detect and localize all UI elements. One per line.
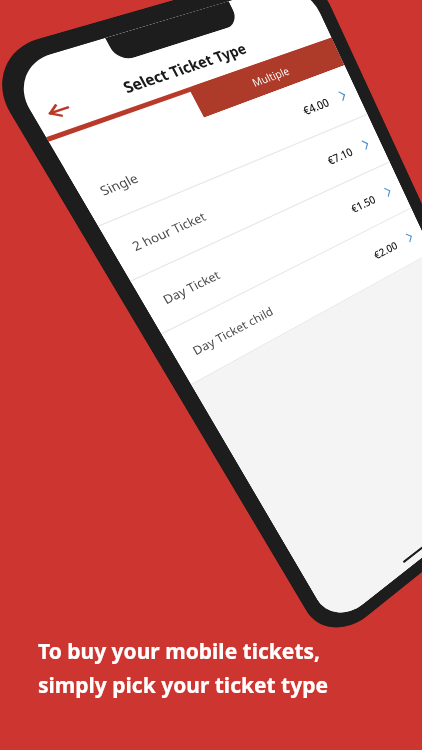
staticText: €2.00	[371, 237, 400, 262]
staticText: 2 hour Ticket	[128, 207, 209, 254]
staticText: simply pick your ticket type	[38, 671, 329, 700]
button[interactable]: Multiple	[188, 38, 345, 118]
button[interactable]: Day Ticket	[131, 162, 411, 333]
staticText: To buy your mobile tickets,	[38, 637, 321, 666]
button[interactable]: Back	[42, 98, 74, 123]
staticText: Single	[96, 169, 142, 199]
staticText: €4.00	[300, 94, 332, 118]
staticText: Day Ticket child	[189, 303, 276, 358]
staticText: €1.50	[348, 191, 378, 216]
staticText: €7.10	[325, 143, 355, 168]
staticText: Select Ticket Type	[119, 38, 250, 98]
button[interactable]: 2 hour Ticket	[98, 115, 389, 281]
staticText: Multiple	[249, 63, 292, 90]
button[interactable]: Day Ticket child	[162, 208, 422, 384]
staticText: Day Ticket	[159, 266, 223, 307]
button[interactable]: Single	[65, 65, 367, 226]
